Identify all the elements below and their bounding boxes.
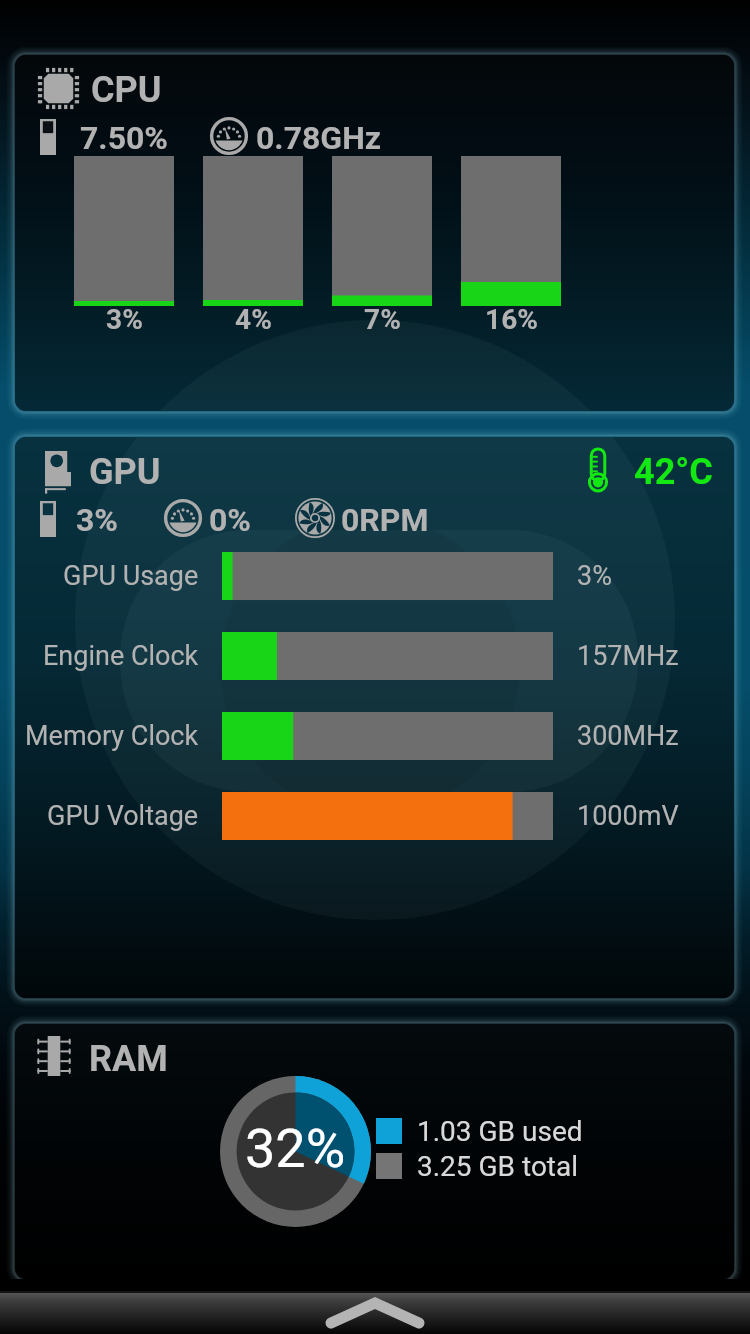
staticText: CPU — [91, 69, 162, 111]
staticText: 0RPM — [341, 501, 429, 539]
staticText: 32% — [245, 1117, 346, 1180]
button[interactable]: RAM — [15, 1024, 734, 1279]
other: Temperature — [585, 448, 611, 492]
staticText: 4% — [235, 303, 272, 336]
staticText: 0.78GHz — [256, 119, 382, 157]
staticText: 3% — [76, 501, 119, 539]
staticText: 0% — [209, 501, 252, 539]
staticText: 157MHz — [577, 640, 679, 672]
staticText: Memory Clock — [25, 720, 199, 752]
button[interactable]: GPU — [15, 437, 734, 998]
staticText: 3.25 GB total — [417, 1150, 579, 1183]
staticText: 3% — [106, 303, 143, 336]
staticText: 7% — [364, 303, 401, 336]
other: RAM — [36, 1036, 72, 1076]
staticText: 16% — [485, 303, 538, 336]
staticText: GPU Usage — [63, 560, 199, 592]
staticText: GPU — [89, 451, 161, 493]
staticText: GPU Voltage — [47, 800, 199, 832]
other: CPU — [36, 66, 81, 111]
staticText: 3% — [577, 560, 612, 592]
staticText: 1.03 GB used — [417, 1115, 583, 1148]
staticText: 300MHz — [577, 720, 679, 752]
staticText: 42°C — [634, 451, 713, 493]
staticText: 7.50% — [80, 119, 169, 157]
other: GPU — [45, 451, 71, 492]
staticText: Engine Clock — [43, 640, 199, 672]
staticText: RAM — [89, 1038, 168, 1080]
button[interactable]: CPU — [15, 55, 734, 411]
staticText: 1000mV — [577, 800, 679, 832]
